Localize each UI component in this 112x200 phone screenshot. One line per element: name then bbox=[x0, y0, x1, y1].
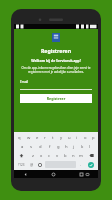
staticText: j bbox=[73, 144, 75, 150]
staticText: Registreer bbox=[20, 96, 92, 101]
button[interactable]: Recents bbox=[78, 171, 84, 177]
staticText: Registreren bbox=[20, 47, 92, 54]
staticText: c bbox=[48, 153, 51, 159]
button[interactable]: s bbox=[27, 143, 36, 150]
staticText: o bbox=[84, 135, 87, 141]
button[interactable]: l bbox=[86, 143, 94, 150]
staticText: w bbox=[27, 135, 31, 141]
button[interactable]: c bbox=[45, 152, 53, 159]
button[interactable]: Backspace bbox=[85, 152, 97, 159]
staticText: d bbox=[39, 144, 42, 150]
staticText: @ bbox=[30, 162, 34, 167]
staticText: k bbox=[81, 144, 84, 150]
staticText: Welkom bij de Servicesit-app! bbox=[20, 58, 92, 63]
staticText: . bbox=[80, 162, 82, 167]
button[interactable]: Emoji bbox=[36, 161, 44, 168]
staticText: y bbox=[60, 135, 63, 141]
staticText: ?123 bbox=[18, 163, 25, 167]
button[interactable]: u bbox=[65, 134, 73, 141]
button[interactable]: g bbox=[54, 143, 62, 150]
button[interactable]: Keyboard switch bbox=[84, 171, 90, 177]
button[interactable]: z bbox=[28, 152, 37, 159]
staticText: m bbox=[79, 153, 83, 159]
staticText: u bbox=[68, 135, 71, 141]
button[interactable]: w bbox=[24, 134, 33, 141]
staticText: h bbox=[65, 144, 68, 150]
button[interactable]: Back bbox=[22, 171, 28, 177]
button[interactable]: t bbox=[49, 134, 57, 141]
button[interactable]: Registreer bbox=[20, 94, 92, 103]
staticText: x bbox=[40, 153, 43, 159]
staticText: b bbox=[64, 153, 67, 159]
button[interactable]: o bbox=[81, 134, 89, 141]
button[interactable]: k bbox=[78, 143, 86, 150]
button[interactable]: b bbox=[61, 152, 69, 159]
button[interactable]: ?123 bbox=[15, 161, 28, 168]
button[interactable]: e bbox=[33, 134, 41, 141]
staticText: a bbox=[21, 144, 24, 150]
staticText: l bbox=[89, 144, 91, 150]
button[interactable]: j bbox=[70, 143, 78, 150]
button[interactable]: m bbox=[77, 152, 85, 159]
button[interactable]: i bbox=[73, 134, 81, 141]
staticText: z bbox=[32, 153, 34, 159]
button[interactable]: y bbox=[57, 134, 65, 141]
button[interactable]: p bbox=[89, 134, 97, 141]
staticText: Om de app-inkomensgebruiken dien jeje ee… bbox=[20, 66, 92, 74]
staticText: s bbox=[30, 144, 33, 150]
button[interactable]: Home bbox=[50, 171, 56, 177]
button[interactable]: r bbox=[41, 134, 49, 141]
staticText: i bbox=[76, 135, 78, 141]
button[interactable]: x bbox=[37, 152, 45, 159]
staticText: Email bbox=[20, 80, 92, 84]
staticText: q bbox=[18, 135, 21, 141]
button[interactable]: Shift bbox=[15, 152, 28, 159]
staticText: t bbox=[52, 135, 54, 141]
button[interactable]: @ bbox=[28, 161, 36, 168]
button[interactable]: n bbox=[69, 152, 77, 159]
button[interactable]: f bbox=[45, 143, 54, 150]
staticText: v bbox=[56, 153, 59, 159]
button[interactable]: a bbox=[18, 143, 27, 150]
button[interactable]: v bbox=[53, 152, 61, 159]
staticText: r bbox=[44, 135, 46, 141]
staticText: p bbox=[92, 135, 95, 141]
staticText: f bbox=[49, 144, 51, 150]
button[interactable]: q bbox=[15, 134, 24, 141]
button[interactable]: d bbox=[36, 143, 45, 150]
button[interactable]: Enter bbox=[85, 161, 97, 168]
button[interactable]: . bbox=[77, 161, 85, 168]
staticText: g bbox=[57, 144, 60, 150]
button[interactable]: h bbox=[62, 143, 70, 150]
staticText: e bbox=[36, 135, 39, 141]
staticText: n bbox=[72, 153, 75, 159]
